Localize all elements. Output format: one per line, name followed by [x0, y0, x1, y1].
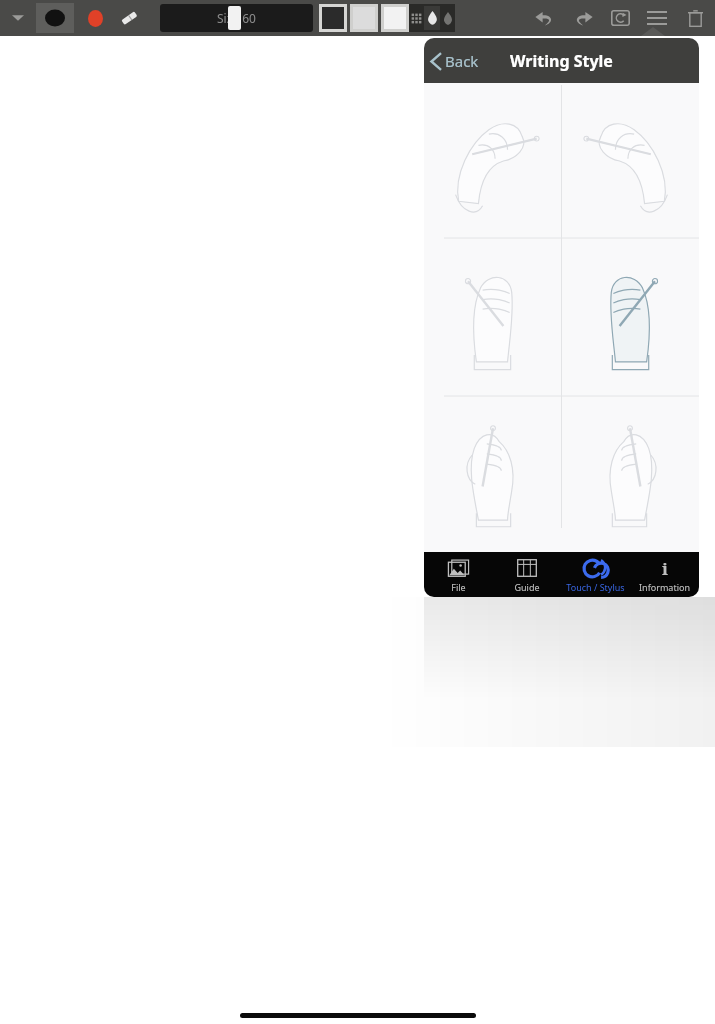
button[interactable]: Writing style option	[424, 395, 561, 551]
button[interactable]: Paper swatch	[381, 4, 409, 32]
button[interactable]: Writing style option	[561, 239, 699, 395]
button[interactable]: Back	[430, 51, 479, 71]
button[interactable]: Reset	[604, 0, 636, 36]
button[interactable]: Paper swatch	[350, 4, 378, 32]
button[interactable]: Writing style option	[561, 83, 699, 239]
button[interactable]: Opacity high	[424, 6, 440, 30]
staticText: Information	[639, 581, 690, 593]
button[interactable]: i	[630, 552, 699, 593]
staticText: Writing Style	[510, 50, 613, 72]
button[interactable]: Guide	[492, 552, 561, 593]
button[interactable]: Eraser	[114, 3, 144, 33]
button[interactable]: File	[424, 552, 492, 593]
button[interactable]: Touch / Stylus	[561, 552, 630, 593]
button[interactable]: Menu	[641, 0, 673, 36]
button[interactable]: Opacity low	[440, 4, 455, 32]
button[interactable]: Texture	[409, 4, 424, 32]
button[interactable]: Size 60	[160, 4, 313, 32]
button[interactable]: Writing style option	[561, 395, 699, 551]
staticText: Back	[445, 51, 479, 71]
button[interactable]: Paper swatch	[319, 4, 347, 32]
button[interactable]: Writing style option	[424, 83, 561, 239]
button[interactable]: Brush	[36, 3, 74, 33]
button[interactable]: Undo	[528, 0, 560, 36]
staticText: Size 60	[217, 10, 256, 26]
staticText: Guide	[514, 581, 540, 593]
staticText: Touch / Stylus	[566, 581, 625, 593]
button[interactable]: Redo	[567, 0, 599, 36]
button[interactable]: Writing style option	[424, 239, 561, 395]
staticText: File	[451, 581, 466, 593]
button[interactable]: Expand toolbar	[4, 0, 32, 36]
staticText: i	[662, 557, 668, 579]
button[interactable]: Delete	[679, 0, 711, 36]
button[interactable]: Colour	[80, 3, 110, 33]
